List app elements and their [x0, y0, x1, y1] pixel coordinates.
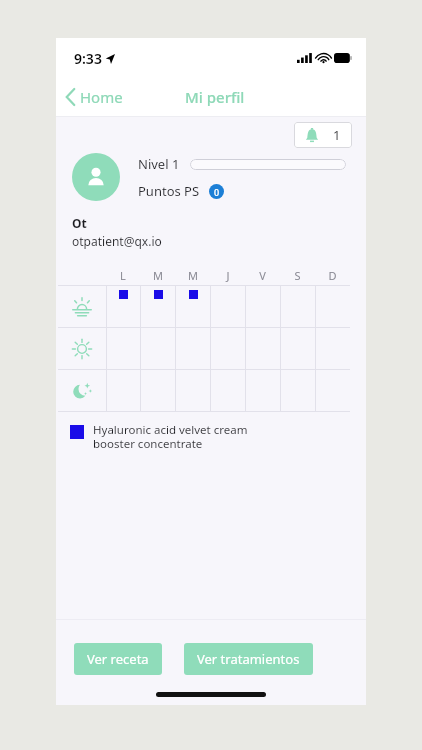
- staticText: L: [120, 268, 126, 283]
- staticText: M: [153, 268, 163, 283]
- staticText: 0: [214, 186, 220, 198]
- button[interactable]: Home: [56, 83, 131, 111]
- staticText: S: [294, 268, 301, 283]
- button[interactable]: Ver receta: [74, 643, 162, 675]
- button[interactable]: Ver tratamientos: [184, 643, 313, 675]
- staticText: M: [188, 268, 198, 283]
- staticText: Ot: [72, 215, 87, 231]
- staticText: Hyaluronic acid velvet cream booster con…: [93, 422, 248, 451]
- staticText: Puntos PS: [138, 182, 200, 200]
- staticText: Ver receta: [87, 650, 149, 668]
- staticText: Home: [80, 87, 123, 107]
- button[interactable]: Notifications: [294, 122, 352, 148]
- button[interactable]: [141, 286, 175, 327]
- button[interactable]: [107, 286, 140, 327]
- staticText: Mi perfil: [185, 87, 245, 107]
- button[interactable]: [176, 286, 210, 327]
- staticText: Ver tratamientos: [197, 650, 300, 668]
- staticText: Nivel 1: [138, 155, 180, 173]
- staticText: V: [259, 268, 266, 283]
- staticText: J: [226, 268, 230, 283]
- staticText: otpatient@qx.io: [72, 233, 162, 249]
- staticText: 1: [333, 126, 341, 144]
- staticText: D: [328, 268, 337, 283]
- staticText: 9:33: [74, 49, 102, 68]
